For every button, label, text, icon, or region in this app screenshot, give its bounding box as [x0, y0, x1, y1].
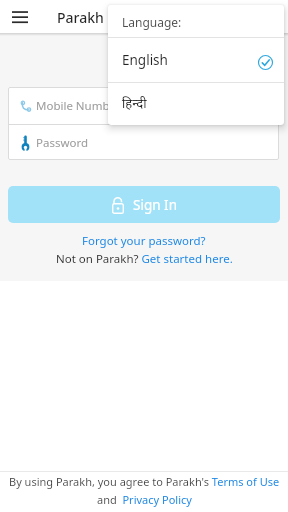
button[interactable]: हिन्दी	[108, 83, 284, 125]
staticText: By using Parakh, you agree to Parakh's T…	[9, 474, 280, 489]
button[interactable]: Forgot your password?	[82, 233, 206, 249]
staticText: Mobile Number	[36, 98, 121, 114]
button[interactable]: Password	[8, 125, 279, 160]
staticText: Sign In	[133, 196, 177, 214]
staticText: Parakh Exam	[57, 8, 145, 27]
staticText: Language:	[122, 14, 182, 30]
button[interactable]: Not on Parakh? Get started here.	[56, 251, 233, 267]
button[interactable]	[8, 7, 32, 27]
staticText: Password	[36, 135, 89, 151]
button[interactable]: English	[108, 38, 284, 82]
staticText: and Privacy Policy	[97, 492, 192, 507]
button[interactable]: Mobile Number	[8, 87, 279, 124]
staticText: हिन्दी	[122, 94, 147, 112]
button[interactable]: Sign In	[8, 186, 280, 223]
staticText: English	[122, 51, 168, 69]
